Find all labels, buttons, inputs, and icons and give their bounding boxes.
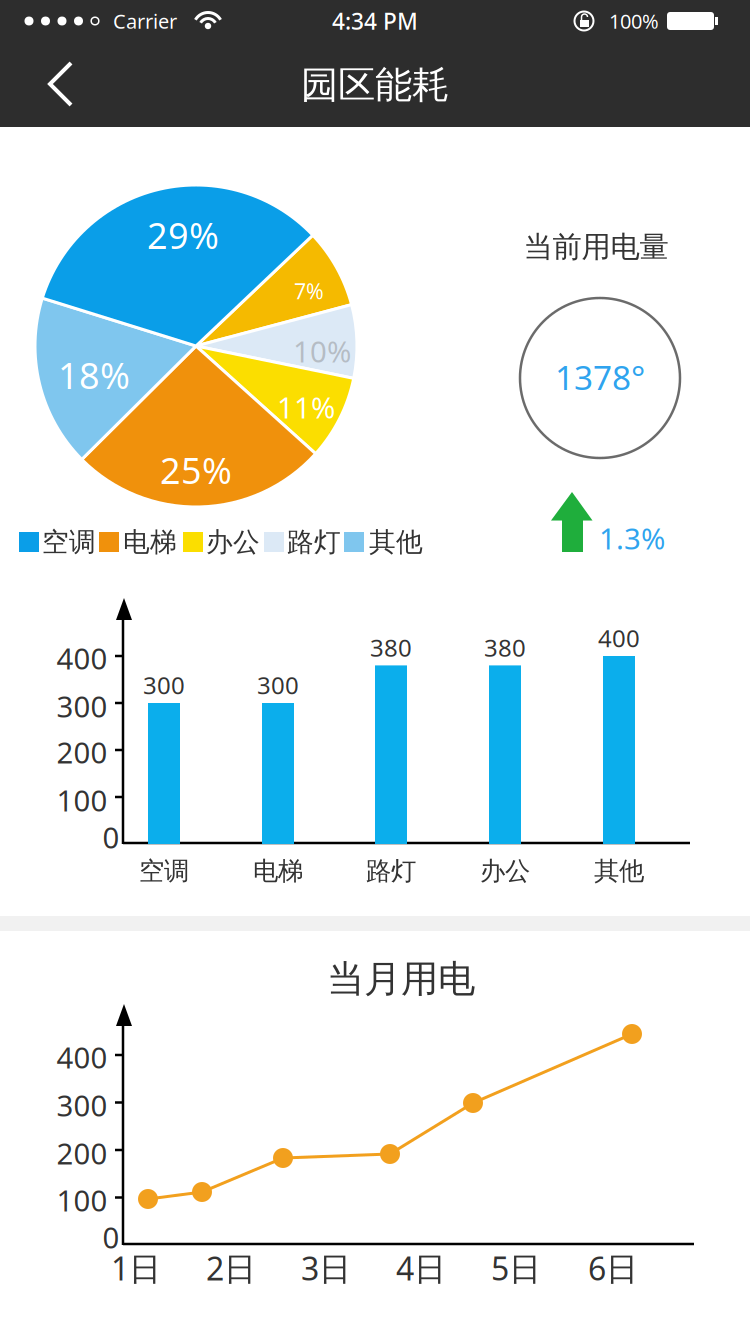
- staticText: 400: [56, 638, 107, 677]
- staticText: 300: [56, 686, 107, 725]
- staticText: 4:34 PM: [332, 6, 418, 36]
- staticText: 4日: [396, 1247, 446, 1289]
- staticText: 400: [56, 1037, 107, 1076]
- staticText: 100%: [609, 8, 659, 34]
- staticText: 300: [143, 669, 185, 701]
- staticText: 25%: [160, 446, 232, 494]
- staticText: 路灯: [287, 526, 341, 558]
- staticText: 11%: [277, 387, 335, 426]
- staticText: 园区能耗: [301, 62, 449, 108]
- staticText: 办公: [206, 526, 260, 558]
- staticText: 300: [56, 1085, 107, 1124]
- staticText: 400: [598, 622, 640, 654]
- staticText: 其他: [594, 855, 644, 886]
- staticText: Carrier: [113, 8, 177, 34]
- staticText: 空调: [42, 526, 96, 558]
- staticText: 100: [56, 780, 107, 819]
- staticText: 200: [56, 1133, 107, 1172]
- staticText: 1.3%: [599, 518, 665, 557]
- staticText: 0: [102, 817, 119, 856]
- staticText: 办公: [480, 855, 530, 886]
- staticText: 10%: [293, 331, 351, 370]
- staticText: 380: [370, 631, 412, 663]
- staticText: 电梯: [253, 855, 303, 886]
- button[interactable]: [38, 54, 82, 114]
- staticText: 1日: [111, 1247, 161, 1289]
- staticText: 7%: [294, 277, 324, 305]
- staticText: 1378°: [555, 355, 645, 399]
- staticText: 200: [56, 732, 107, 771]
- staticText: 路灯: [366, 855, 416, 886]
- staticText: 300: [257, 669, 299, 701]
- staticText: 电梯: [123, 526, 177, 558]
- staticText: 当前用电量: [523, 229, 668, 265]
- staticText: 3日: [301, 1247, 351, 1289]
- staticText: 29%: [147, 211, 219, 259]
- staticText: 空调: [139, 855, 189, 886]
- staticText: 当月用电: [327, 956, 475, 1002]
- staticText: 100: [56, 1180, 107, 1219]
- staticText: 18%: [58, 351, 130, 399]
- staticText: 6日: [588, 1247, 638, 1289]
- staticText: 0: [102, 1217, 119, 1256]
- staticText: 5日: [491, 1247, 541, 1289]
- staticText: 380: [484, 631, 526, 663]
- staticText: 其他: [369, 526, 423, 558]
- staticText: 2日: [206, 1247, 256, 1289]
